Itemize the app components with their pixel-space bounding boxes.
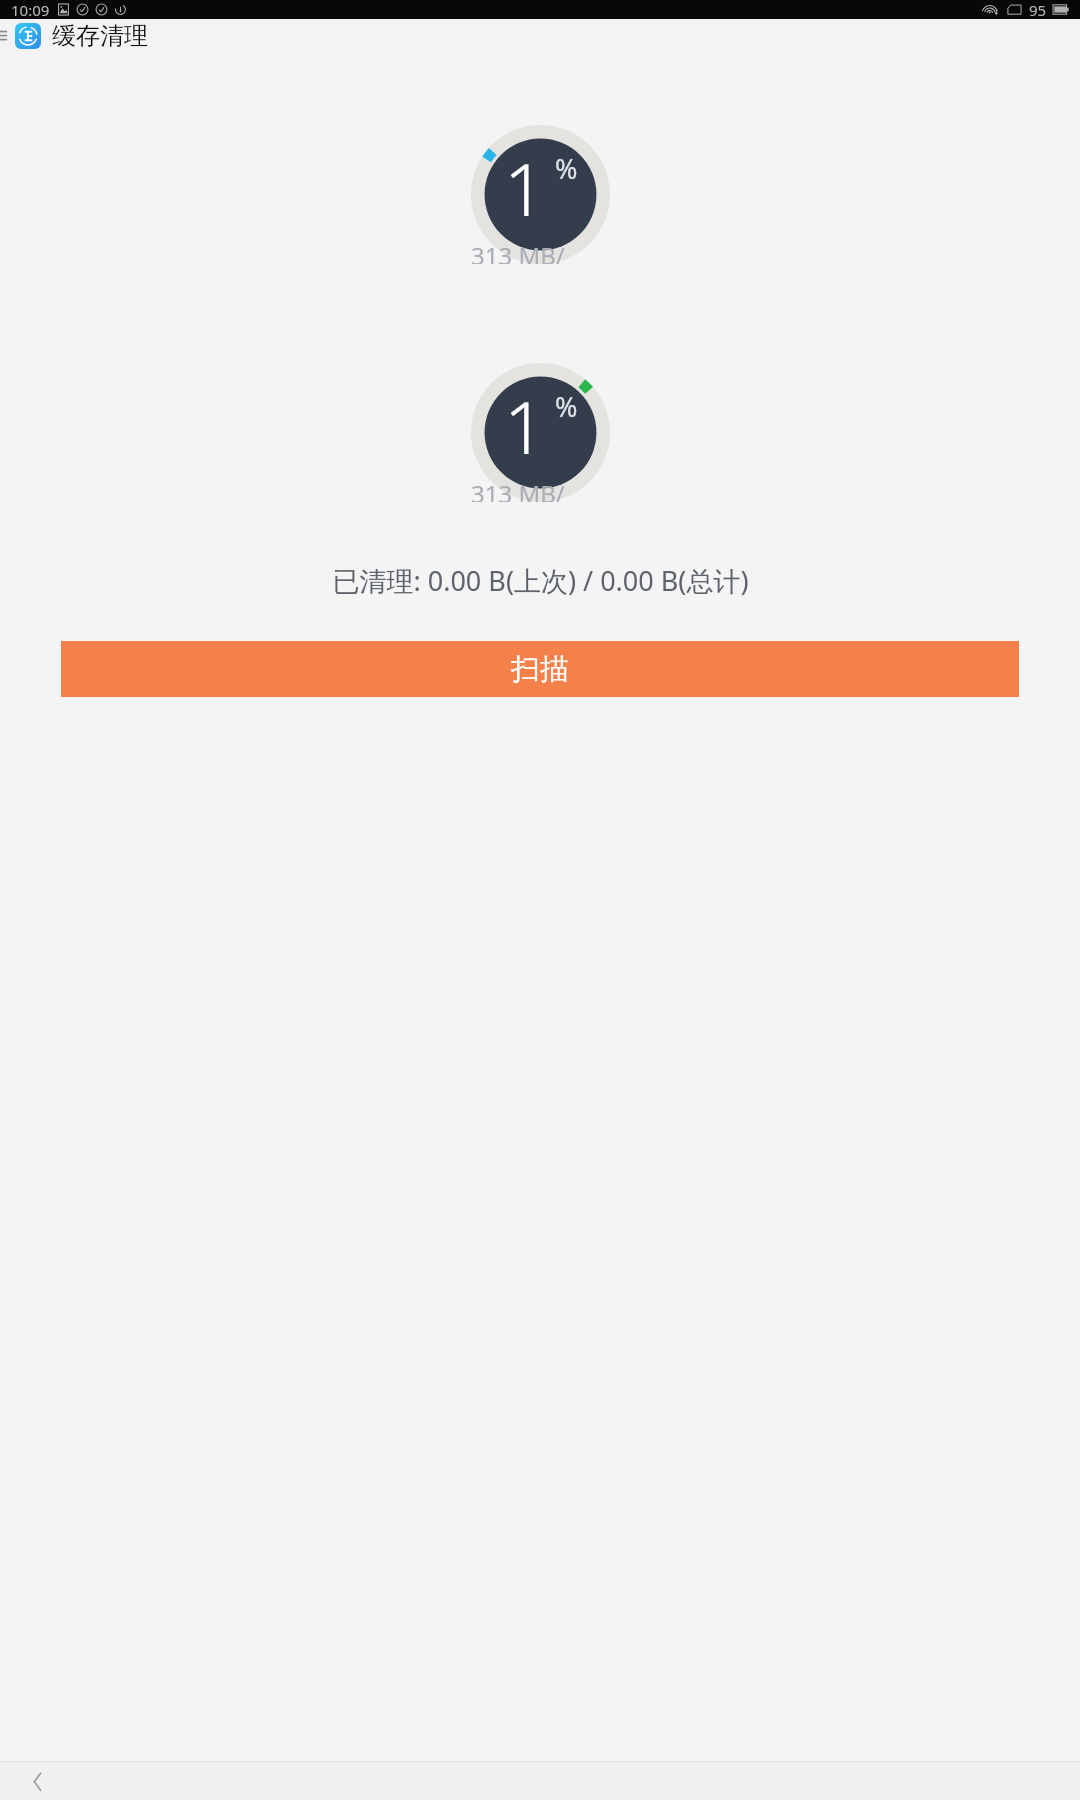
staticText: 10:09	[11, 0, 50, 19]
button[interactable]: Menu	[0, 19, 15, 52]
staticText: 1	[504, 139, 546, 237]
staticText: 95	[1029, 0, 1047, 19]
button[interactable]: Back	[0, 1762, 74, 1800]
staticText: 313 MB/13.14 GB	[471, 239, 610, 264]
staticText: 扫描	[511, 651, 569, 688]
staticText: %	[555, 388, 578, 425]
staticText: 已清理: 0.00 B(上次) / 0.00 B(总计)	[332, 562, 749, 599]
staticText: 缓存清理	[52, 21, 148, 51]
staticText: %	[555, 150, 578, 187]
staticText: 1	[504, 377, 546, 475]
staticText: 313 MB/13.14 GB	[471, 477, 610, 502]
button[interactable]: 扫描	[61, 641, 1019, 697]
